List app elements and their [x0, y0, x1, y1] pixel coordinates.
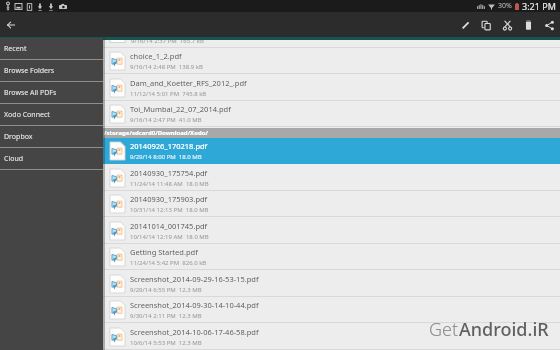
staticText: /storage/sdcard0/Download/Xodo/	[104, 129, 208, 137]
button[interactable]: Browse All PDFs	[0, 82, 103, 104]
staticText: 9/30/14 2:11 PM 12.3 MB	[130, 312, 202, 320]
staticText: 9/29/14 6:55 PM 12.3 MB	[130, 286, 202, 294]
button[interactable]: Toi_Mumbai_22_07_2014.pdf	[0, 101, 560, 127]
staticText: 9/16/14 2:37 PM 165.7 kB	[131, 37, 204, 45]
staticText: 9/16/14 2:48 PM 138.9 kB	[130, 63, 203, 71]
button[interactable]: Share	[539, 13, 560, 37]
staticText: 10/14/14 12:19 AM 18.0 MB	[130, 233, 209, 241]
button[interactable]: Back	[3, 17, 19, 33]
button[interactable]: Screenshot_2014-10-06-17-46-58.pdf	[0, 324, 560, 350]
staticText: choice_1_2.pdf	[130, 51, 182, 61]
staticText: 3:21 PM	[522, 0, 556, 12]
button[interactable]: Cut	[497, 13, 518, 37]
staticText: Getting Started.pdf	[130, 247, 198, 257]
staticText: Screenshot_2014-09-30-14-10-44.pdf	[130, 300, 259, 310]
staticText: Toi_Mumbai_22_07_2014.pdf	[130, 104, 231, 114]
staticText: Recent	[4, 44, 27, 54]
button[interactable]: Browse Folders	[0, 60, 103, 82]
staticText: 20141014_001745.pdf	[130, 221, 208, 231]
button[interactable]: Dropbox	[0, 126, 103, 148]
staticText: Xodo Connect	[4, 110, 50, 120]
button[interactable]: Edit	[455, 13, 476, 37]
staticText: 20140930_175754.pdf	[130, 168, 208, 178]
staticText: 11/24/14 11:48 AM 18.0 MB	[130, 180, 209, 188]
button[interactable]: Screenshot_2014-09-30-14-10-44.pdf	[0, 297, 560, 323]
staticText: 11/12/14 5:01 PM 745.8 kB	[130, 90, 207, 98]
button[interactable]: choice_1_2.pdf	[0, 48, 560, 74]
button[interactable]: Delete	[518, 13, 539, 37]
button[interactable]: 20140930_175903.pdf	[0, 191, 560, 217]
staticText: Dam_and_Koetter_RFS_2012_.pdf	[130, 78, 247, 88]
button[interactable]: 20140930_175754.pdf	[0, 165, 560, 191]
staticText: Screenshot_2014-10-06-17-46-58.pdf	[130, 327, 259, 337]
button[interactable]: Copy	[476, 13, 497, 37]
button[interactable]: Cloud	[0, 148, 103, 170]
staticText: 30%	[498, 1, 512, 11]
staticText: Android.iR	[459, 317, 549, 342]
button[interactable]: Screenshot_2014-09-29-16-53-15.pdf	[0, 271, 560, 297]
button[interactable]: 20140926_170218.pdf	[0, 138, 560, 164]
staticText: 9/29/14 8:00 PM 18.0 MB	[130, 153, 202, 161]
button[interactable]: Dam_and_Koetter_RFS_2012_.pdf	[0, 75, 560, 101]
staticText: Get	[429, 317, 459, 342]
staticText: 11/24/14 5:42 PM 826.0 kB	[130, 259, 207, 267]
staticText: Cloud	[4, 154, 24, 164]
staticText: Browse Folders	[4, 66, 55, 76]
button[interactable]: /storage/sdcard0/Download/Xodo/	[0, 128, 560, 138]
button[interactable]: Getting Started.pdf	[0, 244, 560, 270]
staticText: Browse All PDFs	[4, 88, 57, 98]
button[interactable]: 20141014_001745.pdf	[0, 218, 560, 244]
staticText: 20140926_170218.pdf	[130, 141, 208, 151]
button[interactable]: Xodo Connect	[0, 104, 103, 126]
staticText: Dropbox	[4, 132, 33, 142]
staticText: Screenshot_2014-09-29-16-53-15.pdf	[130, 274, 259, 284]
staticText: 20140930_175903.pdf	[130, 194, 208, 204]
button[interactable]: Recent	[0, 38, 103, 60]
staticText: 10/31/14 12:13 PM 18.0 MB	[130, 206, 209, 214]
staticText: 9/16/14 2:47 PM 41.0 MB	[130, 116, 202, 124]
staticText: 10/6/14 5:53 PM 12.3 MB	[130, 339, 202, 347]
